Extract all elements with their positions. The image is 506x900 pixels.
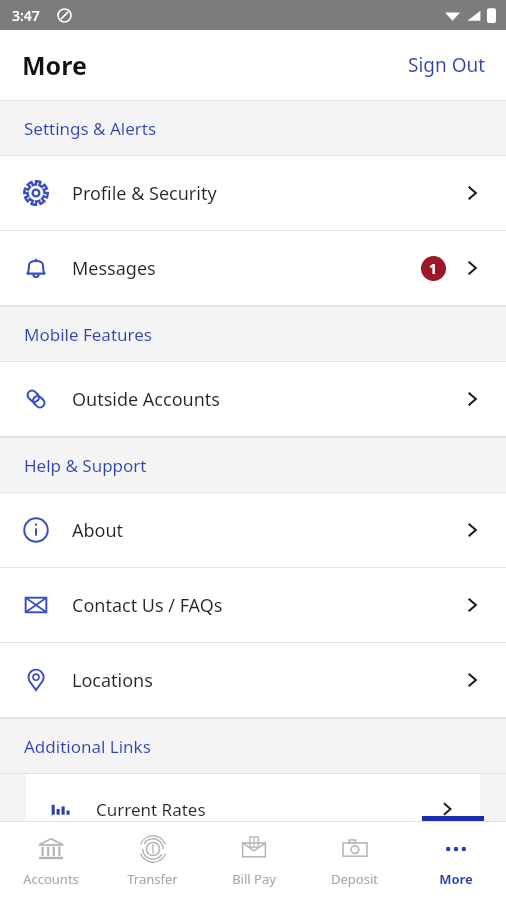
staticText: Additional Links [24,735,151,758]
staticText: Current Rates [96,798,206,821]
staticText: 3:47 [12,6,40,25]
button[interactable]: Profile & Security [0,156,506,230]
button[interactable]: Deposit [304,822,405,900]
button[interactable]: Current Rates [26,774,480,821]
button[interactable]: Outside Accounts [0,362,506,436]
button[interactable]: Messages [0,231,506,305]
staticText: Settings & Alerts [24,117,157,140]
staticText: 1 [429,259,438,278]
staticText: Bill Pay [232,870,276,888]
button[interactable]: Contact Us / FAQs [0,568,506,642]
button[interactable]: About [0,493,506,567]
staticText: More [439,870,473,888]
staticText: Help & Support [24,454,147,477]
button[interactable]: Bill Pay [203,822,304,900]
staticText: Mobile Features [24,323,152,346]
staticText: Profile & Security [72,181,217,206]
button[interactable]: More [405,822,506,900]
staticText: Locations [72,668,153,693]
staticText: Deposit [331,870,378,888]
button[interactable]: Sign Out [388,42,506,88]
staticText: Accounts [23,870,79,888]
button[interactable]: Locations [0,643,506,717]
staticText: Outside Accounts [72,387,220,412]
staticText: More [22,48,87,82]
staticText: About [72,518,124,543]
staticText: Transfer [127,870,178,888]
staticText: Sign Out [408,52,486,78]
staticText: Messages [72,256,156,281]
button[interactable]: Accounts [0,822,102,900]
button[interactable]: Transfer [102,822,203,900]
staticText: Contact Us / FAQs [72,593,223,618]
